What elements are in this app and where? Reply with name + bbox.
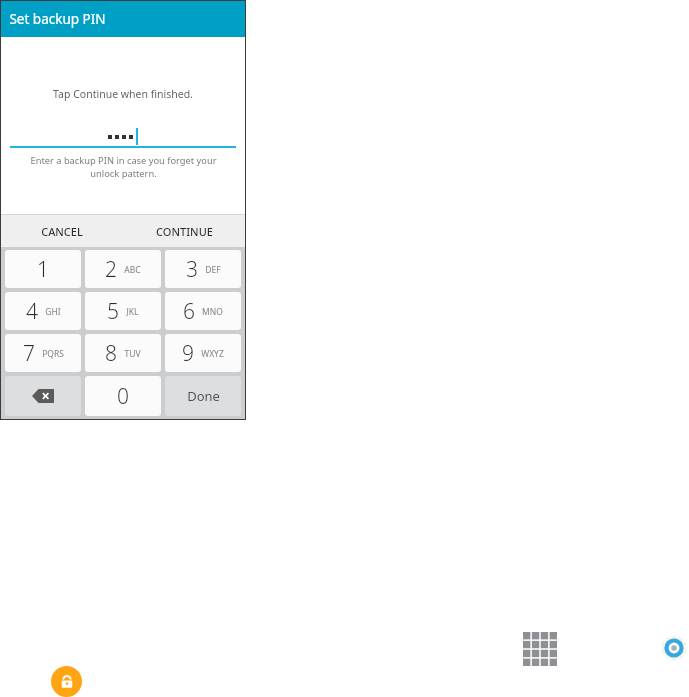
button[interactable]: 9: [165, 334, 241, 372]
staticText: MNO: [202, 306, 223, 318]
staticText: ABC: [124, 264, 141, 276]
staticText: 9: [182, 339, 194, 368]
staticText: PQRS: [42, 348, 64, 360]
staticText: Tap Continue when finished.: [53, 87, 193, 101]
staticText: 5: [107, 297, 119, 326]
staticText: 1: [37, 255, 49, 284]
staticText: 4: [26, 297, 38, 326]
staticText: 6: [183, 297, 195, 326]
staticText: JKL: [126, 306, 139, 318]
staticText: WXYZ: [201, 348, 224, 360]
staticText: DEF: [205, 264, 221, 276]
staticText: 2: [105, 255, 117, 284]
button[interactable]: 1: [5, 250, 81, 288]
button[interactable]: CONTINUE: [123, 215, 245, 247]
staticText: 8: [105, 339, 117, 368]
staticText: 0: [117, 382, 129, 411]
staticText: CONTINUE: [156, 224, 213, 239]
button[interactable]: Settings: [655, 629, 689, 666]
button[interactable]: 2: [85, 250, 161, 288]
staticText: Done: [187, 387, 220, 405]
staticText: Set backup PIN: [9, 10, 106, 28]
button[interactable]: 0: [85, 376, 161, 416]
staticText: 3: [186, 255, 198, 284]
button[interactable]: 5: [85, 292, 161, 330]
button[interactable]: 7: [5, 334, 81, 372]
button[interactable]: Apps: [521, 630, 559, 668]
button[interactable]: Lock: [51, 666, 82, 697]
staticText: GHI: [45, 306, 61, 318]
staticText: TUV: [124, 348, 141, 360]
button[interactable]: CANCEL: [1, 215, 123, 247]
staticText: Enter a backup PIN in case you forget yo…: [30, 154, 217, 167]
button[interactable]: 8: [85, 334, 161, 372]
button[interactable]: Backspace: [5, 376, 81, 416]
button[interactable]: Done: [165, 376, 241, 416]
staticText: CANCEL: [41, 224, 83, 239]
staticText: 7: [23, 339, 35, 368]
button[interactable]: 4: [5, 292, 81, 330]
button[interactable]: 3: [165, 250, 241, 288]
button[interactable]: 6: [165, 292, 241, 330]
staticText: unlock pattern.: [90, 167, 157, 180]
